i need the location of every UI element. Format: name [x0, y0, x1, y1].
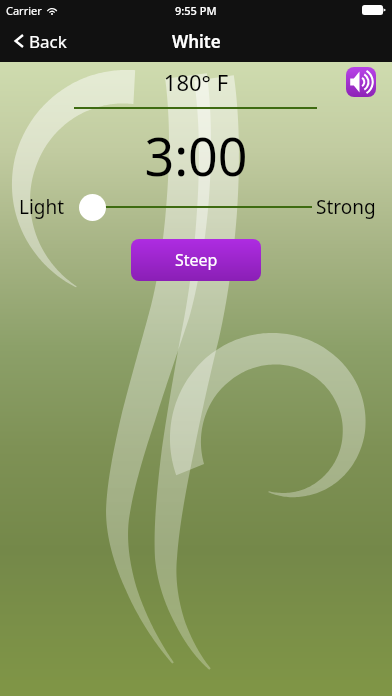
staticText: Carrier	[6, 3, 42, 18]
staticText: Steep	[175, 249, 218, 271]
button[interactable]: Steep	[131, 239, 261, 281]
staticText: Strong	[316, 194, 376, 220]
button[interactable]: Back	[9, 20, 67, 62]
staticText: 180° F	[0, 67, 392, 97]
button[interactable]: Strength slider	[79, 194, 106, 221]
staticText: Light	[19, 194, 65, 220]
staticText: Back	[29, 30, 67, 53]
staticText: 9:55 PM	[175, 3, 217, 18]
staticText: White	[172, 30, 221, 53]
staticText: 3:00	[0, 120, 392, 191]
button[interactable]: Sound on	[346, 67, 376, 97]
